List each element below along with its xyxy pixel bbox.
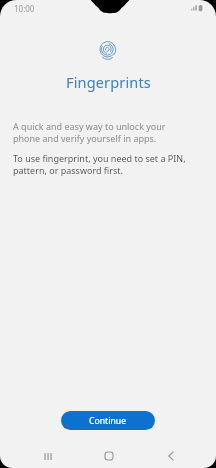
button[interactable]: Recent apps: [36, 444, 60, 468]
staticText: Fingerprints: [66, 72, 151, 92]
staticText: 10:00: [14, 3, 35, 14]
button[interactable]: Continue: [61, 411, 155, 430]
button[interactable]: Back: [158, 444, 182, 468]
button[interactable]: Home: [97, 444, 121, 468]
staticText: Continue: [89, 415, 127, 427]
staticText: To use fingerprint, you need to set a PI…: [13, 152, 186, 177]
staticText: A quick and easy way to unlock your phon…: [13, 120, 166, 145]
